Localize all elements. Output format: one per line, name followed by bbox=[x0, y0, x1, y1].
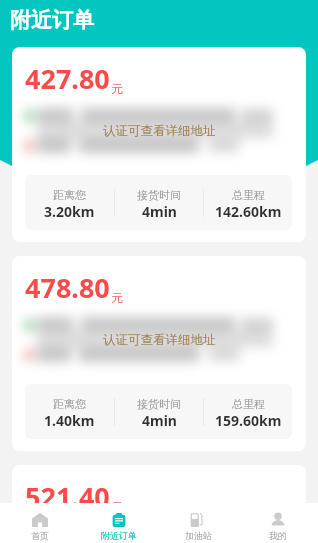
staticText: 元 bbox=[111, 290, 123, 305]
staticText: 接货时间 bbox=[137, 397, 181, 411]
staticText: 认证可查看详细地址 bbox=[103, 123, 216, 139]
button[interactable]: 478.80 bbox=[12, 256, 306, 451]
staticText: 距离您 bbox=[53, 397, 86, 411]
staticText: 加油站 bbox=[185, 530, 212, 541]
staticText: 427.80 bbox=[25, 60, 110, 97]
staticText: 接货时间 bbox=[137, 188, 181, 202]
staticText: 元 bbox=[111, 81, 123, 96]
staticText: 认证可查看详细地址 bbox=[103, 332, 216, 348]
staticText: 总里程 bbox=[232, 397, 265, 411]
staticText: 3.20km bbox=[44, 202, 95, 221]
staticText: 我的 bbox=[269, 530, 287, 541]
staticText: 521.40 bbox=[25, 478, 110, 515]
staticText: 4min bbox=[142, 202, 177, 221]
staticText: 4min bbox=[142, 411, 177, 430]
staticText: 142.60km bbox=[215, 202, 282, 221]
staticText: 478.80 bbox=[25, 269, 110, 306]
button[interactable]: 我的 bbox=[238, 503, 318, 543]
staticText: 附近订单 bbox=[10, 7, 94, 33]
staticText: 元 bbox=[111, 499, 123, 514]
staticText: 159.60km bbox=[215, 411, 282, 430]
staticText: 距离您 bbox=[53, 188, 86, 202]
staticText: 附近订单 bbox=[101, 530, 137, 541]
button[interactable]: 首页 bbox=[0, 503, 79, 543]
button[interactable]: 附近订单 bbox=[79, 503, 158, 543]
staticText: 1.40km bbox=[44, 411, 95, 430]
button[interactable]: 加油站 bbox=[158, 503, 238, 543]
button[interactable]: 521.40 bbox=[12, 465, 306, 543]
staticText: 总里程 bbox=[232, 188, 265, 202]
button[interactable]: 427.80 bbox=[12, 47, 306, 242]
staticText: 首页 bbox=[31, 530, 49, 541]
